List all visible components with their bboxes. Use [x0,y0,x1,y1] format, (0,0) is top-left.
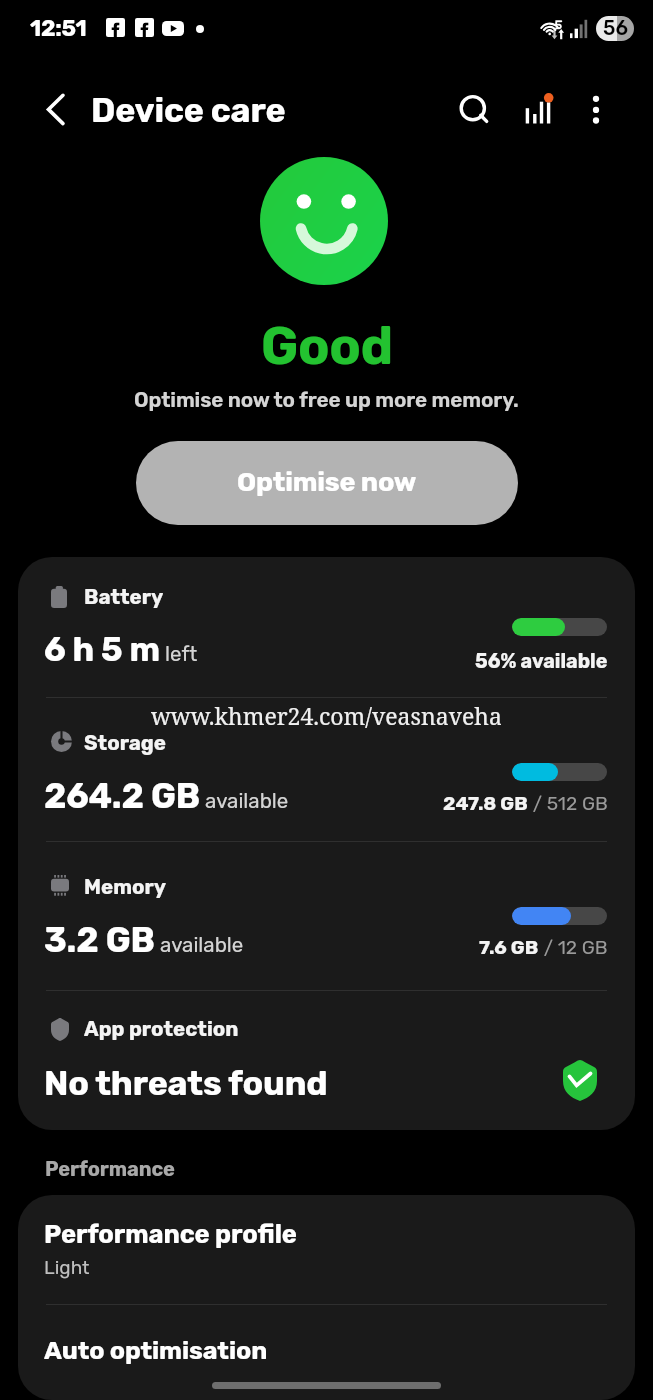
staticText: Good [261,315,393,377]
button[interactable]: Storage [18,703,635,843]
staticText: Optimise now [237,466,417,498]
button[interactable]: Optimise now [136,441,518,525]
staticText: Device care [91,90,286,130]
staticText: left [160,642,198,666]
staticText: Optimise now to free up more memory. [134,388,519,413]
staticText: / 512 GB [528,792,608,815]
staticText: 7.6 GB [479,936,539,959]
button[interactable]: Search [445,78,503,136]
button[interactable]: Auto optimisation [18,1305,635,1400]
staticText: available [200,789,289,813]
staticText: 12:51 [30,15,87,42]
staticText: 56% available [475,650,608,673]
staticText: Performance [45,1157,175,1181]
staticText: Memory [84,875,166,899]
staticText: No threats found [44,1063,328,1103]
staticText: Light [44,1256,90,1279]
staticText: available [155,933,244,957]
staticText: Auto optimisation [44,1336,268,1366]
staticText: / 12 GB [539,936,608,959]
staticText: App protection [84,1017,239,1041]
staticText: 3.2 GB [44,920,155,961]
staticText: 56 [603,16,628,40]
button[interactable]: More options [567,78,625,136]
staticText: 247.8 GB [443,792,528,815]
staticText: Storage [84,731,167,755]
button[interactable]: App protection [18,991,635,1130]
staticText: 264.2 GB [44,776,200,817]
button[interactable]: Battery [18,557,635,697]
button[interactable]: Performance profile [18,1195,635,1304]
staticText: Battery [84,585,164,609]
button[interactable]: Navigate up [27,80,85,138]
staticText: Performance profile [44,1219,297,1249]
button[interactable]: Memory [18,847,635,987]
button[interactable]: Usage history [510,78,568,136]
staticText: www.khmer24.com/veasnaveha [151,700,502,731]
staticText: 6 h 5 m [44,630,160,670]
